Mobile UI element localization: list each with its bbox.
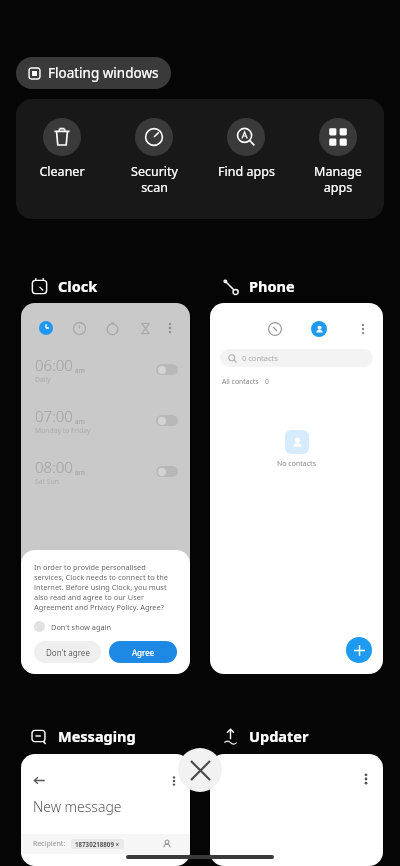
staticText: am <box>75 366 85 375</box>
staticText: 08:00 <box>35 457 73 477</box>
staticText: 0 contacts <box>242 353 278 363</box>
staticText: Updater <box>249 726 309 746</box>
button[interactable]: Cleaner <box>16 99 108 219</box>
button[interactable]: 06:00 <box>21 303 190 674</box>
staticText: Agree <box>132 647 155 658</box>
button[interactable]: Updater <box>222 726 309 746</box>
button[interactable]: Find apps <box>200 99 292 219</box>
staticText: Recipient: <box>33 839 66 849</box>
staticText: am <box>75 417 85 426</box>
staticText: am <box>75 468 85 477</box>
button[interactable]: Floating windows <box>16 57 171 89</box>
button[interactable]: Agree <box>109 641 177 663</box>
staticText: In order to provide personalised service… <box>34 562 177 612</box>
button[interactable]: Clock <box>31 276 98 296</box>
button[interactable] <box>210 754 383 866</box>
button[interactable] <box>156 415 178 426</box>
staticText: All contacts <box>222 377 259 386</box>
button[interactable]: Don't agree <box>34 641 101 663</box>
staticText: Messaging <box>58 726 136 746</box>
staticText: Don't show again <box>51 622 112 632</box>
staticText: Don't agree <box>46 647 90 658</box>
staticText: Find apps <box>218 163 275 180</box>
staticText: Sat Sun <box>35 477 59 486</box>
staticText: Clock <box>58 276 98 296</box>
button[interactable]: Close <box>178 748 222 792</box>
staticText: 18730218809 × <box>75 840 120 848</box>
button[interactable] <box>156 466 178 477</box>
staticText: Daily <box>35 375 51 384</box>
staticText: Manage apps <box>314 163 362 195</box>
button[interactable]: New message <box>21 754 190 866</box>
button[interactable]: 0 contacts <box>210 303 383 674</box>
button[interactable] <box>156 364 178 375</box>
button[interactable]: Manage apps <box>292 99 384 219</box>
staticText: Floating windows <box>48 64 159 82</box>
staticText: Cleaner <box>39 163 85 180</box>
staticText: Phone <box>249 276 295 296</box>
staticText: New message <box>33 797 122 816</box>
staticText: 07:00 <box>35 406 73 426</box>
button[interactable]: Messaging <box>31 726 136 746</box>
staticText: Security scan <box>131 163 178 195</box>
staticText: 0 <box>265 377 269 386</box>
button[interactable]: Security scan <box>108 99 200 219</box>
button[interactable]: 0 contacts <box>220 349 373 367</box>
staticText: 06:00 <box>35 355 73 375</box>
button[interactable]: Add contact <box>346 637 372 663</box>
staticText: No contacts <box>277 459 316 469</box>
staticText: Monday to Friday <box>35 426 91 435</box>
button[interactable]: Phone <box>222 276 295 296</box>
